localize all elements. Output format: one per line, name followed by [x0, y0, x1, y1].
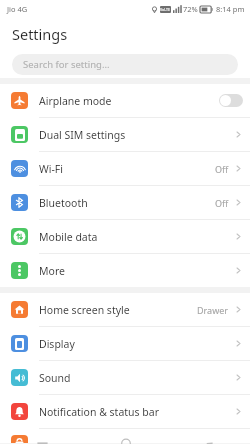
button[interactable]: Airplane mode	[0, 84, 250, 117]
staticText: Off	[215, 163, 229, 175]
staticText: Display	[39, 337, 75, 351]
staticText: Notification & status bar	[39, 405, 160, 419]
button[interactable]: Mobile data	[0, 220, 250, 253]
button[interactable]: Home screen style	[0, 293, 250, 326]
staticText: 72%	[183, 4, 198, 14]
staticText: Drawer	[197, 304, 229, 316]
button[interactable]: Display	[0, 327, 250, 360]
staticText: Sound	[39, 371, 71, 385]
staticText: Jio 4G	[7, 4, 28, 14]
button[interactable]: Bluetooth	[0, 186, 250, 219]
staticText: Search for setting...	[23, 58, 110, 71]
staticText: More	[39, 264, 65, 278]
staticText: Settings	[12, 24, 68, 44]
button[interactable]: Back	[167, 443, 250, 444]
button[interactable]: Home	[84, 443, 167, 444]
button[interactable]: Sound	[0, 361, 250, 394]
staticText: 8:14 pm	[216, 4, 245, 14]
staticText: VoLTE	[160, 7, 171, 12]
button[interactable]: Wi-Fi	[0, 152, 250, 185]
staticText: Off	[215, 197, 229, 209]
staticText: Bluetooth	[39, 196, 88, 210]
button[interactable]: Notification & status bar	[0, 395, 250, 428]
staticText: Airplane mode	[39, 94, 112, 108]
button[interactable]: More	[0, 254, 250, 287]
button[interactable]: Search for setting...	[12, 54, 238, 75]
staticText: Mobile data	[39, 230, 98, 244]
button[interactable]: Recents	[0, 443, 84, 444]
button[interactable]	[0, 429, 250, 443]
button[interactable]: Dual SIM settings	[0, 118, 250, 151]
staticText: Dual SIM settings	[39, 128, 126, 142]
button[interactable]: Airplane mode toggle	[219, 94, 243, 107]
staticText: Wi-Fi	[39, 162, 64, 176]
staticText: Home screen style	[39, 303, 130, 317]
